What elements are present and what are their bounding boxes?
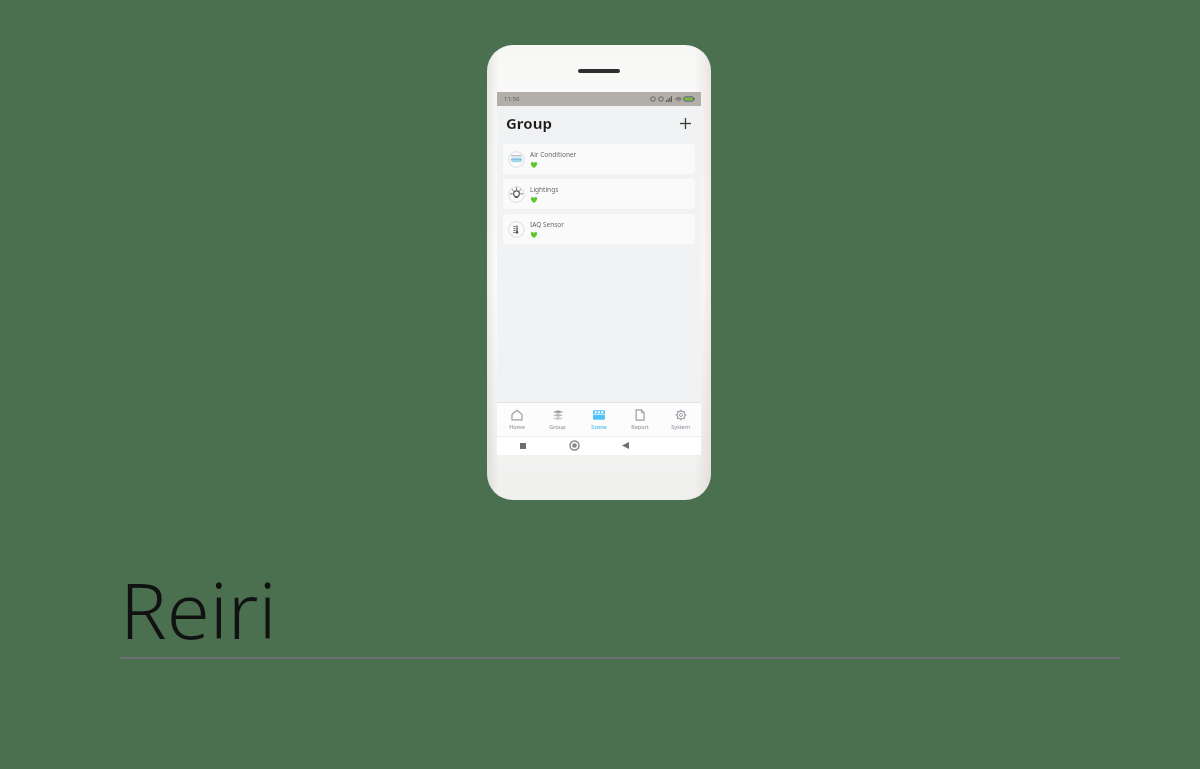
staticText: Group bbox=[549, 423, 566, 430]
staticText: Report bbox=[631, 423, 649, 430]
staticText: Scene bbox=[591, 423, 607, 430]
button[interactable]: Scene bbox=[578, 402, 619, 436]
staticText: IAQ Sensor bbox=[530, 220, 564, 229]
button[interactable]: System bbox=[660, 402, 701, 436]
staticText: Lightings bbox=[530, 185, 559, 194]
button[interactable]: Air Conditioner bbox=[503, 144, 695, 174]
other: Scene bbox=[593, 409, 605, 421]
staticText: Reiri bbox=[120, 556, 277, 662]
staticText: Home bbox=[509, 423, 525, 430]
staticText: Group bbox=[506, 113, 552, 133]
staticText: System bbox=[671, 423, 690, 430]
staticText: 11:50 bbox=[504, 95, 520, 103]
button[interactable]: Report bbox=[619, 402, 660, 436]
button[interactable]: IAQ Sensor bbox=[503, 214, 695, 244]
button[interactable]: Recents bbox=[512, 436, 534, 455]
button[interactable]: Add group bbox=[674, 112, 696, 134]
button[interactable]: Home bbox=[563, 436, 585, 455]
staticText: Air Conditioner bbox=[530, 150, 577, 159]
button[interactable]: Group bbox=[537, 402, 578, 436]
button[interactable]: Lightings bbox=[503, 179, 695, 209]
button[interactable]: Back bbox=[614, 436, 636, 455]
button[interactable]: Home bbox=[497, 402, 537, 436]
